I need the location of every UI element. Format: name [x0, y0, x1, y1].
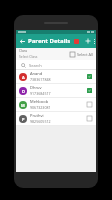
button[interactable]: Class: [19, 48, 67, 60]
staticText: Select All: [77, 52, 93, 57]
staticText: Class: [19, 48, 28, 53]
button[interactable]: Add parent: [82, 34, 93, 48]
button[interactable]: Not selected: [84, 112, 95, 125]
staticText: P: [22, 117, 25, 122]
staticText: M: [21, 103, 25, 108]
button[interactable]: More options: [93, 34, 96, 48]
button[interactable]: A: [16, 70, 96, 83]
staticText: 9067323081: [30, 105, 51, 110]
staticText: Mehboob: [30, 99, 49, 104]
button[interactable]: D: [16, 84, 96, 97]
staticText: Pruthvi: [30, 113, 44, 118]
button[interactable]: Not selected: [84, 98, 95, 111]
staticText: Parent Details: [28, 37, 71, 45]
button[interactable]: M: [16, 98, 96, 111]
button[interactable]: Selected: [84, 70, 95, 83]
staticText: 7383617848: [30, 77, 51, 82]
staticText: Anand: [30, 71, 43, 76]
staticText: 9825605512: [30, 119, 51, 124]
button[interactable]: Selected: [84, 84, 95, 97]
staticText: A: [22, 75, 25, 80]
staticText: D: [22, 89, 25, 94]
staticText: Dhruv: [30, 85, 42, 90]
button[interactable]: Search: [16, 60, 96, 70]
staticText: 9173684517: [30, 91, 51, 96]
button[interactable]: P: [16, 112, 96, 125]
staticText: Select Class: [19, 54, 38, 59]
button[interactable]: Back: [16, 34, 28, 48]
button[interactable]: Notifications: [71, 34, 82, 48]
button[interactable]: Select All: [67, 48, 96, 60]
staticText: Search: [29, 63, 42, 68]
